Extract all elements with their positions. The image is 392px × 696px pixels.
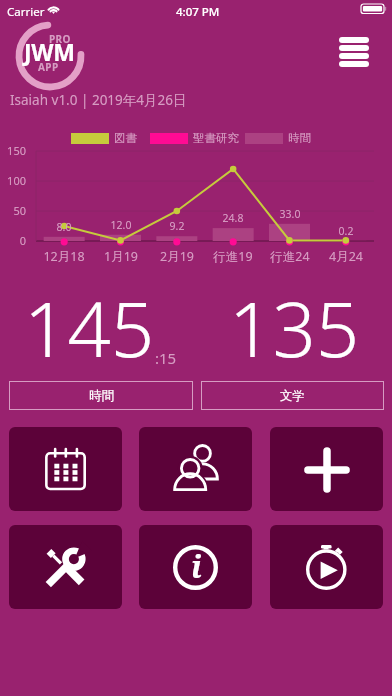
staticText: 文学	[280, 388, 305, 404]
staticText: 9.2	[152, 219, 202, 233]
button[interactable]: People	[139, 427, 252, 511]
staticText: 図書	[114, 131, 137, 145]
button[interactable]: Calendar	[9, 427, 122, 511]
staticText: 135	[229, 276, 360, 380]
staticText: 行進24	[258, 248, 322, 265]
button[interactable]: Info	[139, 525, 252, 609]
staticText: APP	[38, 60, 59, 74]
staticText: JWM	[24, 36, 75, 67]
button[interactable]: Add	[270, 427, 383, 511]
staticText: Carrier	[7, 4, 45, 20]
staticText: 12.0	[96, 218, 146, 232]
staticText: 50	[0, 203, 26, 218]
staticText: 0	[0, 233, 26, 248]
button[interactable]: 文学	[201, 381, 384, 410]
staticText: Isaiah v1.0 | 2019年4月26日	[10, 91, 187, 109]
staticText: 0.2	[321, 224, 371, 238]
staticText: 聖書研究	[193, 131, 239, 145]
staticText: 150	[0, 143, 26, 158]
staticText: :15	[155, 348, 177, 368]
staticText: 2月19	[145, 248, 209, 265]
button[interactable]: Tools	[9, 525, 122, 609]
staticText: 145	[24, 276, 155, 380]
button[interactable]: 時間	[9, 381, 193, 410]
staticText: PRO	[49, 32, 71, 46]
staticText: 12月18	[32, 248, 96, 265]
staticText: 時間	[288, 131, 311, 145]
staticText: 1月19	[89, 248, 153, 265]
button[interactable]: Menu	[331, 29, 377, 74]
staticText: 時間	[89, 388, 114, 404]
staticText: 8.0	[39, 220, 89, 234]
staticText: 33.0	[265, 207, 315, 221]
staticText: 4月24	[314, 248, 378, 265]
button[interactable]: Timer	[270, 525, 383, 609]
staticText: 100	[0, 173, 26, 188]
staticText: 4:07 PM	[176, 4, 220, 20]
staticText: 行進19	[201, 248, 265, 265]
staticText: i	[191, 546, 202, 587]
staticText: 24.8	[208, 211, 258, 225]
